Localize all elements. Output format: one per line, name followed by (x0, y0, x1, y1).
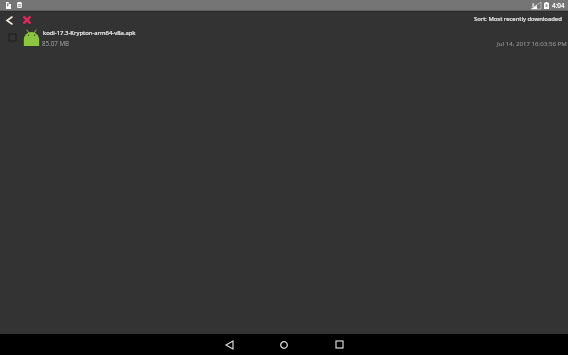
button[interactable]: Sort: Most recently downloaded (468, 13, 568, 25)
button[interactable]: Back (0, 12, 18, 28)
button[interactable]: Recent apps (324, 334, 354, 355)
staticText: Sort: Most recently downloaded (474, 15, 562, 23)
button[interactable]: Cancel download (19, 12, 35, 28)
staticText: Jul 14, 2017 16:03:56 PM (497, 39, 567, 47)
button[interactable]: Select kodi-17.3-Krypton-arm64-v8a.apk (5, 30, 19, 44)
button[interactable]: Back (214, 334, 244, 355)
staticText: 4:04 (552, 1, 565, 10)
button[interactable]: Home (269, 334, 299, 355)
staticText: 85.07 MB (42, 39, 70, 47)
button[interactable]: Select kodi-17.3-Krypton-arm64-v8a.apk (0, 27, 568, 49)
staticText: kodi-17.3-Krypton-arm64-v8a.apk (43, 29, 136, 37)
